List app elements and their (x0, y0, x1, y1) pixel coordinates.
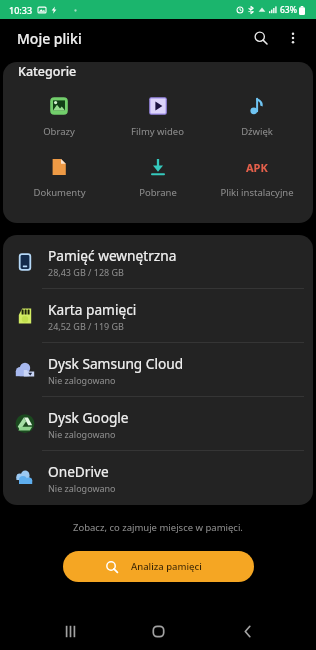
staticText: Karta pamięci (48, 300, 137, 319)
staticText: 28,43 GB / 128 GB (48, 266, 124, 278)
staticText: Analiza pamięci (131, 560, 202, 573)
button[interactable]: Filmy wideo (108, 96, 207, 138)
button[interactable]: Analiza pamięci (63, 551, 254, 582)
staticText: Dźwięk (241, 125, 273, 138)
button[interactable]: APK (207, 157, 306, 199)
staticText: Dysk Samsung Cloud (48, 354, 184, 373)
button[interactable]: More options (277, 22, 309, 54)
staticText: 10:33 (9, 4, 33, 16)
staticText: 63% (280, 4, 297, 16)
button[interactable]: Dźwięk (207, 96, 306, 138)
button[interactable]: Pobrane (108, 157, 207, 199)
staticText: Nie zalogowano (48, 374, 116, 386)
staticText: Pobrane (139, 186, 177, 199)
button[interactable]: Dysk Samsung Cloud (3, 343, 313, 397)
button[interactable]: Karta pamięci (3, 289, 313, 343)
button[interactable]: Pamięć wewnętrzna (3, 235, 313, 289)
staticText: Dokumenty (33, 186, 86, 199)
staticText: 24,52 GB / 119 GB (48, 320, 124, 332)
button[interactable]: Obrazy (10, 96, 108, 138)
staticText: APK (246, 160, 268, 175)
staticText: Filmy wideo (131, 125, 184, 138)
staticText: Kategorie (18, 63, 77, 80)
staticText: Obrazy (43, 125, 75, 138)
staticText: Nie zalogowano (48, 482, 116, 494)
button[interactable]: Dokumenty (10, 157, 108, 199)
button[interactable]: Recent apps (57, 618, 83, 644)
button[interactable]: Search (245, 22, 277, 54)
staticText: Nie zalogowano (48, 428, 116, 440)
button[interactable]: Dysk Google (3, 397, 313, 451)
staticText: Pliki instalacyjne (220, 186, 294, 199)
button[interactable]: Home (145, 618, 171, 644)
staticText: Dysk Google (48, 408, 129, 427)
staticText: Pamięć wewnętrzna (48, 246, 177, 265)
button[interactable]: Back (234, 618, 260, 644)
staticText: Zobacz, co zajmuje miejsce w pamięci. (73, 521, 243, 534)
button[interactable]: OneDrive (3, 451, 313, 505)
staticText: Moje pliki (17, 29, 82, 48)
staticText: OneDrive (48, 462, 109, 481)
